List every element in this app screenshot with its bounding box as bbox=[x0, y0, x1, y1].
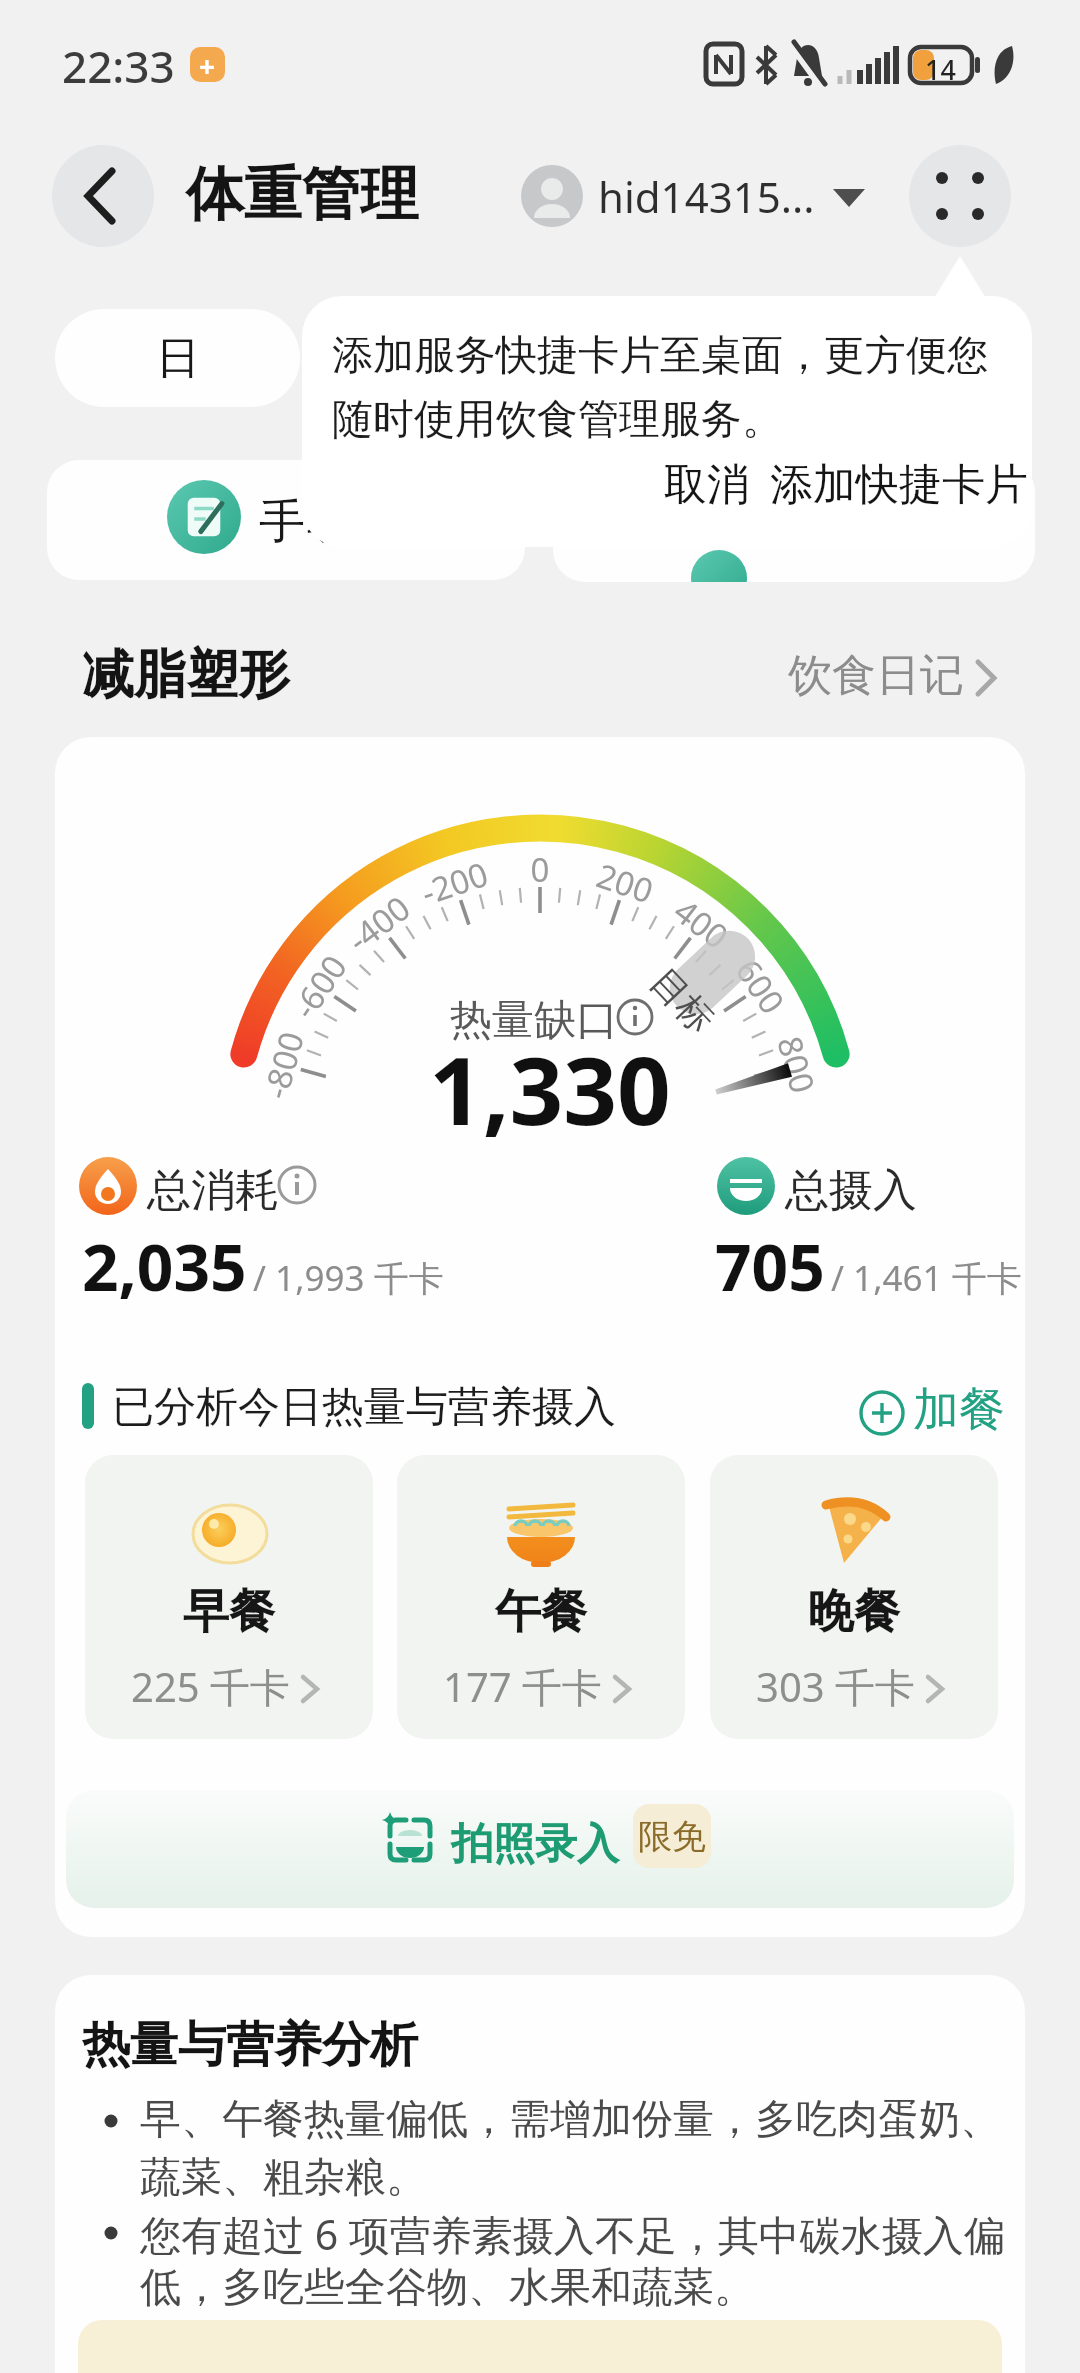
staticText: / 1,993 千卡 bbox=[253, 1254, 444, 1302]
button[interactable]: 饮食日记 bbox=[788, 648, 1008, 703]
staticText: 加餐 bbox=[913, 1381, 1005, 1439]
button[interactable]: 取消 bbox=[664, 458, 750, 512]
button[interactable]: hid14315... bbox=[520, 164, 867, 228]
staticText: 日 bbox=[156, 331, 200, 386]
staticText: 晚餐 bbox=[808, 1583, 900, 1641]
button[interactable]: 日 bbox=[55, 309, 300, 407]
button[interactable] bbox=[909, 145, 1011, 247]
staticText: 取消 bbox=[664, 458, 750, 512]
staticText: / 1,461 千卡 bbox=[831, 1254, 1022, 1302]
staticText: 早、午餐热量偏低，需增加份量，多吃肉蛋奶、 bbox=[140, 2094, 1001, 2146]
staticText: 体重管理 bbox=[186, 158, 418, 231]
staticText: 705 bbox=[715, 1223, 825, 1310]
staticText: 蔬菜、粗杂粮。 bbox=[140, 2152, 427, 2204]
staticText: 午餐 bbox=[495, 1583, 587, 1641]
staticText: 拍照录入 bbox=[451, 1818, 619, 1871]
button[interactable]: 晚餐 bbox=[710, 1455, 998, 1739]
button[interactable]: 添加快捷卡片 bbox=[770, 458, 1028, 512]
staticText: 225 千卡 bbox=[131, 1659, 291, 1714]
staticText: 1,330 bbox=[429, 1025, 671, 1153]
staticText: 2,035 bbox=[82, 1223, 247, 1310]
staticText: 177 千卡 bbox=[443, 1659, 603, 1714]
staticText: 早餐 bbox=[183, 1583, 275, 1641]
staticText: 已分析今日热量与营养摄入 bbox=[112, 1381, 616, 1434]
staticText: hid14315... bbox=[598, 168, 815, 225]
staticText: 低，多吃些全谷物、水果和蔬菜。 bbox=[140, 2262, 755, 2314]
staticText: 您有超过 6 项营养素摄入不足，其中碳水摄入偏 bbox=[140, 2206, 1005, 2262]
button[interactable] bbox=[553, 460, 1035, 582]
staticText: 减脂塑形 bbox=[82, 642, 290, 708]
button[interactable]: 手动记录 bbox=[47, 460, 525, 580]
button[interactable]: 拍照录入 bbox=[66, 1790, 1014, 1908]
staticText: 热量与营养分析 bbox=[82, 2015, 418, 2075]
button[interactable]: 加餐 bbox=[859, 1381, 1005, 1439]
staticText: 添加服务快捷卡片至桌面，更方便您 bbox=[332, 330, 988, 382]
button[interactable]: 午餐 bbox=[397, 1455, 685, 1739]
staticText: 热量缺口 bbox=[450, 994, 618, 1047]
staticText: 总摄入 bbox=[785, 1163, 917, 1218]
button[interactable] bbox=[52, 145, 154, 247]
staticText: 手动记录 bbox=[259, 493, 443, 551]
button[interactable]: 早餐 bbox=[85, 1455, 373, 1739]
staticText: 添加快捷卡片 bbox=[770, 458, 1028, 512]
staticText: 饮食日记 bbox=[788, 648, 964, 703]
staticText: 随时使用饮食管理服务。 bbox=[332, 394, 783, 446]
staticText: 14 bbox=[925, 51, 956, 88]
staticText: 303 千卡 bbox=[756, 1659, 916, 1714]
staticText: 限免 bbox=[638, 1815, 706, 1858]
staticText: + bbox=[199, 47, 216, 82]
staticText: 22:33 bbox=[62, 36, 175, 96]
staticText: 总消耗 bbox=[147, 1163, 279, 1218]
